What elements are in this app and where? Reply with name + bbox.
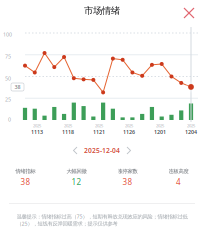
staticText: 1126	[123, 128, 135, 135]
staticText: 75	[5, 53, 11, 60]
button[interactable]: Previous day	[72, 146, 79, 155]
staticText: 2025	[33, 123, 41, 128]
staticText: 4	[176, 177, 181, 187]
staticText: 50	[5, 75, 11, 82]
staticText: 涨停家数	[117, 168, 137, 175]
staticText: 2025-12-04	[84, 146, 120, 155]
staticText: 市场情绪	[84, 5, 120, 16]
staticText: 情绪指标	[15, 168, 35, 175]
staticText: 38	[122, 177, 132, 187]
button[interactable]: Next day	[125, 146, 132, 155]
staticText: 温馨提示：情绪指标过高（75），短期有释放兑现效应的风险；情绪指标过低（25），…	[16, 213, 187, 227]
staticText: 0	[8, 116, 11, 123]
staticText: 1121	[93, 128, 105, 135]
staticText: 25	[5, 96, 11, 103]
staticText: 1201	[154, 128, 166, 135]
staticText: 2025	[156, 123, 164, 128]
staticText: 1113	[31, 128, 43, 135]
staticText: 连板高度	[168, 168, 188, 175]
staticText: 1204	[185, 128, 197, 135]
staticText: 38	[14, 83, 20, 91]
staticText: 12	[71, 177, 81, 187]
staticText: 38	[20, 177, 30, 187]
staticText: 2025	[187, 123, 195, 128]
staticText: 2025	[64, 123, 72, 128]
staticText: 100	[3, 31, 12, 38]
staticText: 2025	[95, 123, 103, 128]
button[interactable]: Close	[180, 4, 198, 22]
staticText: 1118	[62, 128, 74, 135]
staticText: 2025	[125, 123, 133, 128]
staticText: 大幅回撤	[66, 168, 86, 175]
